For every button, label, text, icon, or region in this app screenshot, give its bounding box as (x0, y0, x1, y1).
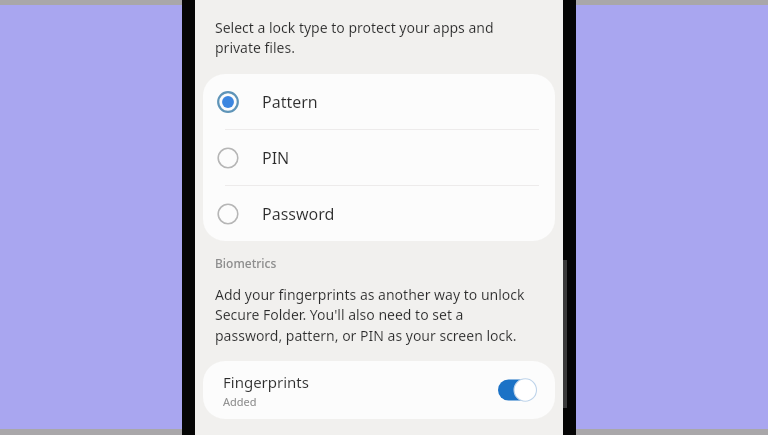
button[interactable]: Pattern (203, 74, 555, 129)
button[interactable]: Fingerprints toggle (497, 378, 537, 402)
staticText: Added (223, 394, 257, 409)
staticText: Select a lock type to protect your apps … (215, 18, 527, 58)
staticText: Fingerprints (223, 372, 309, 392)
staticText: PIN (262, 147, 290, 169)
staticText: Password (262, 203, 335, 225)
button[interactable]: Password (203, 186, 555, 241)
button[interactable]: PIN (203, 130, 555, 185)
staticText: Pattern (262, 91, 318, 113)
button[interactable]: Fingerprints (203, 361, 555, 419)
staticText: Biometrics (215, 255, 277, 271)
staticText: Add your fingerprints as another way to … (215, 285, 533, 346)
